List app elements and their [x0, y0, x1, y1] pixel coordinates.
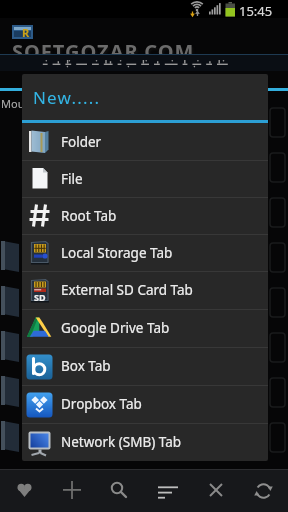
staticText: Network (SMB) Tab	[61, 433, 182, 451]
staticText: Folder	[61, 133, 102, 151]
staticText: Google Drive Tab	[61, 319, 170, 337]
staticText: Box Tab	[61, 357, 111, 375]
button[interactable]: Dropbox Tab	[22, 385, 268, 423]
button[interactable]	[0, 469, 48, 512]
staticText: Mou	[1, 96, 25, 111]
staticText: SOFTGOZAR.COM	[12, 38, 195, 65]
button[interactable]: Network (SMB) Tab	[22, 423, 268, 461]
staticText: Dropbox Tab	[61, 395, 142, 413]
staticText: R	[22, 25, 30, 39]
staticText: Local Storage Tab	[61, 244, 173, 262]
staticText: File	[61, 170, 83, 188]
button[interactable]: Box Tab	[22, 347, 268, 385]
button[interactable]: Local Storage Tab	[22, 234, 268, 271]
button[interactable]: Root Tab	[22, 197, 268, 234]
button[interactable]	[192, 469, 240, 512]
staticText: New.....	[33, 86, 101, 109]
button[interactable]	[96, 469, 144, 512]
button[interactable]	[144, 469, 192, 512]
button[interactable]	[240, 469, 288, 512]
button[interactable]	[48, 469, 96, 512]
button[interactable]: Google Drive Tab	[22, 309, 268, 347]
button[interactable]: Folder	[22, 123, 268, 160]
button[interactable]: SD	[22, 271, 268, 309]
button[interactable]: File	[22, 160, 268, 197]
staticText: 15:45	[239, 2, 273, 20]
staticText: SD	[34, 291, 46, 303]
staticText: Root Tab	[61, 207, 117, 225]
staticText: External SD Card Tab	[61, 281, 193, 299]
